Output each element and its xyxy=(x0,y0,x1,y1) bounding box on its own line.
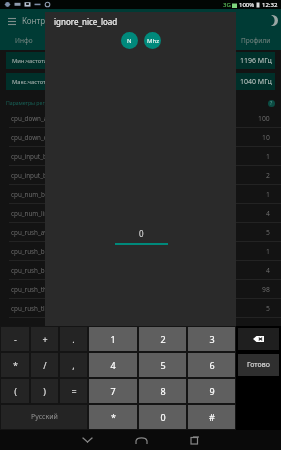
staticText: * xyxy=(111,411,116,423)
button[interactable]: 2 xyxy=(139,327,186,351)
button[interactable]: Мин.частота xyxy=(6,52,275,69)
staticText: N xyxy=(127,37,132,45)
staticText: cpu_input_boost_freq xyxy=(11,152,75,161)
staticText: 0 xyxy=(139,228,144,239)
staticText: Mhz xyxy=(147,37,159,45)
button[interactable]: Готово xyxy=(238,354,279,376)
button[interactable]: Backspace xyxy=(238,328,279,350)
button[interactable]: ) xyxy=(31,379,58,403)
staticText: 100 xyxy=(258,114,270,123)
button[interactable]: . xyxy=(60,327,87,351)
button[interactable]: Макс.частота xyxy=(6,73,275,90)
staticText: Мин.частота xyxy=(12,57,48,65)
button[interactable]: 5 xyxy=(139,353,186,377)
staticText: cpu_rush_tlp xyxy=(11,304,49,313)
staticText: Русский xyxy=(31,412,58,422)
staticText: Параметры регулятора xyxy=(6,99,65,106)
staticText: - xyxy=(14,333,17,345)
staticText: ignore_nice_load xyxy=(54,16,118,27)
staticText: = xyxy=(71,385,77,397)
button[interactable]: = xyxy=(60,379,87,403)
staticText: 2 xyxy=(160,333,166,345)
staticText: 5 xyxy=(160,359,166,371)
button[interactable]: Recents xyxy=(173,432,217,448)
staticText: cpu_rush_avg_times xyxy=(11,228,71,237)
staticText: 2 xyxy=(266,171,270,180)
staticText: 12:32 xyxy=(262,1,278,9)
button[interactable]: 0 xyxy=(139,405,186,429)
staticText: cpu_down_differential xyxy=(11,133,77,142)
button[interactable]: 8 xyxy=(139,379,186,403)
button[interactable]: 6 xyxy=(188,353,235,377)
staticText: 1 xyxy=(266,152,270,161)
staticText: 98 xyxy=(262,285,270,294)
staticText: ) xyxy=(43,385,46,397)
staticText: 1196 МГц xyxy=(240,56,272,66)
button[interactable]: Home xyxy=(119,432,163,448)
staticText: cpu_num_base xyxy=(11,190,56,199)
staticText: 3 xyxy=(209,333,215,345)
button[interactable]: 3 xyxy=(188,327,235,351)
button[interactable]: Back xyxy=(65,432,109,448)
staticText: , xyxy=(72,359,75,371)
button[interactable]: # xyxy=(188,405,235,429)
staticText: Макс.частота xyxy=(12,78,49,86)
button[interactable]: Mhz xyxy=(144,32,161,49)
button[interactable]: N xyxy=(121,32,138,49)
button[interactable]: cpu_num_base xyxy=(0,185,281,203)
staticText: # xyxy=(209,411,215,423)
button[interactable]: Night mode xyxy=(263,11,281,29)
button[interactable]: Help xyxy=(268,100,275,107)
button[interactable]: cpu_input_boost_ms xyxy=(0,166,281,184)
button[interactable]: 9 xyxy=(188,379,235,403)
button[interactable]: , xyxy=(60,353,87,377)
staticText: 6 xyxy=(209,359,215,371)
staticText: Профили xyxy=(241,36,271,45)
button[interactable]: 1 xyxy=(89,327,137,351)
button[interactable]: cpu_down_differential xyxy=(0,128,281,146)
staticText: 10 xyxy=(262,133,270,142)
staticText: 8 xyxy=(160,385,166,397)
button[interactable]: cpu_num_limit xyxy=(0,204,281,222)
button[interactable]: * xyxy=(89,405,137,429)
button[interactable]: + xyxy=(31,327,58,351)
button[interactable]: Контроль xyxy=(82,33,198,48)
staticText: 0 xyxy=(160,411,166,423)
staticText: 1 xyxy=(110,333,116,345)
button[interactable]: cpu_down_avg_times xyxy=(0,109,281,127)
button[interactable]: cpu_rush_boost xyxy=(0,242,281,260)
button[interactable]: cpu_rush_boost_ms xyxy=(0,261,281,279)
button[interactable]: cpu_input_boost_freq xyxy=(0,147,281,165)
button[interactable]: cpu_rush_threshold xyxy=(0,280,281,298)
button[interactable]: Инфо xyxy=(0,33,82,48)
staticText: cpu_input_boost_ms xyxy=(11,171,72,180)
staticText: 1 xyxy=(266,247,270,256)
staticText: 5 xyxy=(266,228,270,237)
staticText: Контроль xyxy=(125,36,155,45)
staticText: / xyxy=(43,359,47,371)
button[interactable]: Menu xyxy=(3,12,21,30)
button[interactable]: * xyxy=(1,353,29,377)
button[interactable]: 4 xyxy=(89,353,137,377)
staticText: 5 xyxy=(266,304,270,313)
staticText: cpu_rush_boost xyxy=(11,247,58,256)
staticText: 1 xyxy=(266,190,270,199)
staticText: 3G xyxy=(223,1,231,9)
staticText: Контроль xyxy=(22,15,59,26)
staticText: 4 xyxy=(266,209,270,218)
button[interactable]: cpu_rush_avg_times xyxy=(0,223,281,241)
button[interactable]: Профили xyxy=(198,33,281,48)
staticText: cpu_num_limit xyxy=(11,209,55,218)
button[interactable]: cpu_rush_tlp xyxy=(0,299,281,317)
button[interactable]: / xyxy=(31,353,58,377)
staticText: ( xyxy=(14,385,17,397)
button[interactable]: ( xyxy=(1,379,29,403)
staticText: 100% xyxy=(239,1,255,9)
button[interactable]: - xyxy=(1,327,29,351)
staticText: cpu_down_avg_times xyxy=(11,114,74,123)
button[interactable]: 7 xyxy=(89,379,137,403)
staticText: 1040 МГц xyxy=(240,77,272,87)
button[interactable]: Русский xyxy=(1,405,87,429)
staticText: cpu_rush_boost_ms xyxy=(11,266,70,275)
staticText: Готово xyxy=(247,360,270,370)
